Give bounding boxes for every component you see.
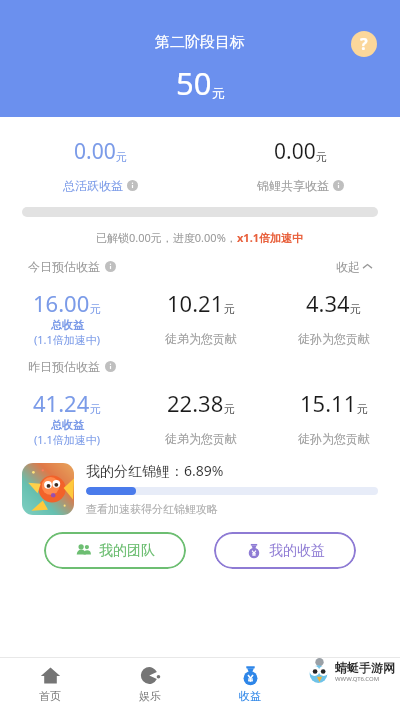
button[interactable]: 收起 (336, 259, 372, 274)
staticText: ? (360, 33, 368, 55)
button[interactable]: 0.00 (200, 137, 400, 193)
staticText: 昨日预估收益 (28, 359, 100, 374)
staticText: 元 (224, 302, 235, 316)
staticText: 徒弟为您贡献 (165, 331, 237, 346)
staticText: 10.21 (167, 288, 224, 318)
staticText: 查看加速获得分红锦鲤攻略 (86, 502, 218, 516)
staticText: 50 (176, 62, 212, 104)
button[interactable]: 帮助 (351, 31, 377, 57)
button[interactable]: 4.34 (267, 288, 400, 346)
staticText: 我的团队 (99, 542, 155, 560)
staticText: 总活跃收益 (63, 178, 123, 193)
staticText: WWW.QT6.COM (335, 675, 380, 683)
button[interactable]: 10.21 (134, 288, 267, 346)
staticText: 22.38 (167, 388, 224, 418)
staticText: 徒孙为您贡献 (298, 431, 370, 446)
staticText: 已解锁0.00元，进度0.00%， (96, 230, 237, 245)
staticText: (1.1倍加速中) (34, 432, 101, 447)
staticText: 总收益 (51, 418, 84, 432)
staticText: 16.00 (33, 288, 90, 318)
staticText: 元 (116, 150, 127, 164)
button[interactable]: 15.11 (267, 388, 400, 446)
button[interactable]: 我的团队 (44, 532, 186, 569)
staticText: 元 (316, 150, 327, 164)
staticText: 元 (350, 302, 361, 316)
button[interactable]: 0.00 (0, 137, 200, 193)
staticText: 今日预估收益 (28, 259, 100, 274)
staticText: 收起 (336, 259, 360, 274)
staticText: 第二阶段目标 (155, 33, 245, 52)
button[interactable]: 41.24 (0, 388, 134, 447)
button[interactable]: 我的分红锦鲤：6.89% (22, 461, 378, 516)
staticText: 元 (90, 302, 101, 316)
button[interactable]: 22.38 (134, 388, 267, 446)
staticText: 徒孙为您贡献 (298, 331, 370, 346)
button[interactable]: 我的收益 (214, 532, 356, 569)
button[interactable]: 首页 (0, 658, 100, 710)
staticText: (1.1倍加速中) (34, 332, 101, 347)
button[interactable]: 收益 (200, 658, 300, 710)
button[interactable]: 娱乐 (100, 658, 200, 710)
staticText: 41.24 (33, 388, 90, 418)
staticText: 娱乐 (139, 689, 161, 703)
staticText: x1.1倍加速中 (237, 230, 304, 245)
staticText: 锦鲤共享收益 (257, 178, 329, 193)
staticText: 15.11 (300, 388, 357, 418)
staticText: 4.34 (306, 288, 350, 318)
staticText: 我的分红锦鲤：6.89% (86, 461, 224, 480)
staticText: 总收益 (51, 318, 84, 332)
staticText: 首页 (39, 689, 61, 703)
staticText: 元 (90, 402, 101, 416)
staticText: 0.00 (274, 137, 316, 166)
staticText: 收益 (239, 689, 261, 703)
staticText: 元 (224, 402, 235, 416)
staticText: 元 (357, 402, 368, 416)
staticText: 徒弟为您贡献 (165, 431, 237, 446)
staticText: 元 (212, 85, 225, 101)
button[interactable]: 16.00 (0, 288, 134, 347)
staticText: 我的收益 (269, 542, 325, 560)
staticText: 蜻蜓手游网 (335, 660, 395, 675)
staticText: 0.00 (74, 137, 116, 166)
